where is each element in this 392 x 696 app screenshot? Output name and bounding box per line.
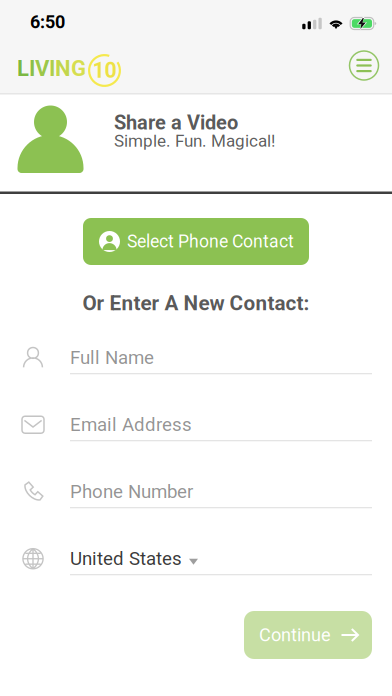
button[interactable]: Email Address — [22, 398, 372, 441]
staticText: United States — [70, 548, 182, 570]
button[interactable]: Full Name — [22, 331, 372, 374]
button[interactable]: Menu — [343, 44, 385, 86]
staticText: Phone Number — [70, 481, 193, 503]
button[interactable]: Select Phone Contact — [83, 218, 309, 265]
staticText: Simple. Fun. Magical! — [114, 131, 275, 151]
staticText: Email Address — [70, 414, 192, 436]
staticText: 10 — [92, 58, 116, 83]
staticText: Or Enter A New Contact: — [82, 291, 309, 315]
staticText: Continue — [259, 624, 331, 646]
staticText: Full Name — [70, 347, 154, 369]
staticText: Select Phone Contact — [127, 231, 294, 252]
staticText: L — [17, 56, 29, 81]
staticText: I — [29, 56, 35, 81]
button[interactable]: Continue — [244, 611, 372, 659]
staticText: I — [49, 56, 55, 81]
staticText: V — [35, 56, 49, 81]
button[interactable]: Phone Number — [22, 465, 372, 508]
staticText: N — [55, 56, 71, 81]
button[interactable]: United States — [22, 532, 372, 575]
staticText: G — [71, 56, 86, 81]
staticText: Share a Video — [114, 111, 238, 134]
staticText: 6:50 — [30, 11, 65, 33]
